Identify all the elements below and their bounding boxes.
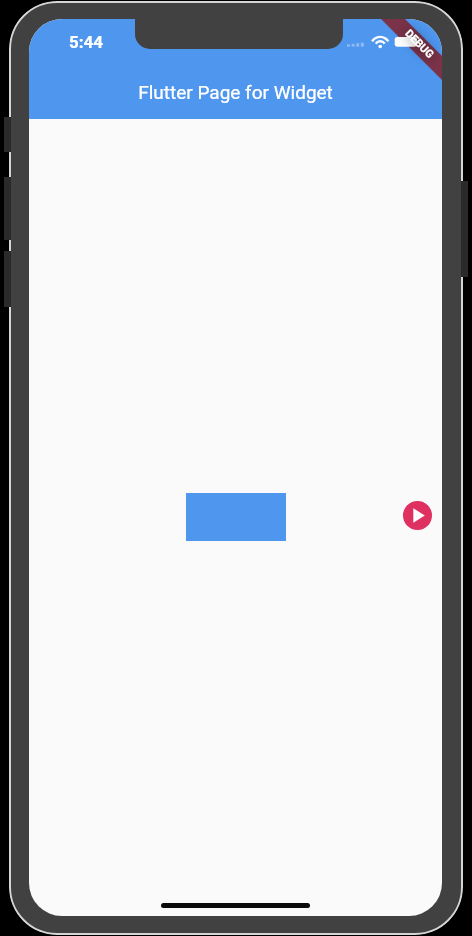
button[interactable]: Play — [403, 501, 432, 530]
staticText: DEBUG — [402, 27, 437, 62]
staticText: 5:44 — [69, 32, 104, 52]
staticText: Flutter Page for Widget — [138, 81, 333, 103]
